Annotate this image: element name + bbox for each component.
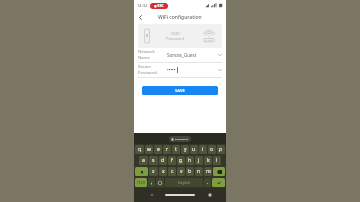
button[interactable]: t (172, 145, 180, 154)
staticText: o (210, 146, 214, 153)
staticText: u (192, 146, 196, 153)
button[interactable]: w (145, 145, 153, 154)
staticText: ?123 (137, 180, 145, 185)
button[interactable]: q (135, 145, 144, 154)
button[interactable]: Hide keyboard (148, 191, 156, 199)
button[interactable]: i (199, 145, 207, 154)
staticText: s (152, 157, 155, 164)
staticText: z (152, 168, 155, 175)
button[interactable]: Back (134, 11, 147, 24)
button[interactable]: o (208, 145, 216, 154)
staticText: q (138, 146, 142, 153)
button[interactable]: English (165, 178, 203, 187)
staticText: j (198, 157, 200, 164)
staticText: . (207, 179, 209, 186)
staticText: WiFi configuration (158, 14, 202, 21)
button[interactable]: h (186, 156, 194, 165)
staticText: b (188, 168, 192, 175)
button[interactable]: p (217, 145, 225, 154)
button[interactable]: f (168, 156, 176, 165)
staticText: Sonoss_Guest (167, 52, 197, 58)
button[interactable]: , (148, 178, 155, 187)
staticText: Router Password (138, 64, 165, 76)
staticText: w (147, 146, 151, 153)
button[interactable]: . (204, 178, 211, 187)
staticText: l (216, 157, 218, 164)
button[interactable]: l (213, 156, 221, 165)
button[interactable]: v (177, 167, 185, 176)
button[interactable]: k (204, 156, 212, 165)
button[interactable]: b (186, 167, 194, 176)
staticText: y (184, 146, 187, 153)
staticText: •••••••••• (175, 137, 189, 142)
staticText: v (180, 168, 183, 175)
staticText: a (142, 157, 145, 164)
button[interactable]: x (159, 167, 167, 176)
staticText: f (171, 157, 173, 164)
staticText: 14:32 (137, 3, 148, 8)
staticText: t (175, 146, 177, 153)
button[interactable]: s (149, 156, 158, 165)
staticText: ● REC (154, 4, 164, 8)
staticText: , (151, 179, 153, 186)
button[interactable]: g (177, 156, 185, 165)
staticText: Network Name (138, 49, 165, 61)
staticText: r (166, 146, 169, 153)
button[interactable]: m (204, 167, 212, 176)
staticText: SSID (171, 31, 180, 36)
staticText: g (179, 157, 183, 164)
button[interactable]: Enter (212, 178, 225, 187)
button[interactable]: Network Name (138, 48, 222, 63)
staticText: m (206, 168, 211, 175)
button[interactable]: Shift (135, 167, 148, 176)
button[interactable]: n (195, 167, 203, 176)
button[interactable]: y (181, 145, 189, 154)
staticText: i (202, 146, 204, 153)
staticText: k (207, 157, 210, 164)
staticText: ••••• (167, 67, 176, 73)
staticText: SAVE (175, 88, 185, 94)
staticText: h (188, 157, 192, 164)
button[interactable]: SAVE (142, 86, 218, 95)
staticText: p (219, 146, 223, 153)
staticText: x (162, 168, 165, 175)
button[interactable]: z (149, 167, 158, 176)
button[interactable]: d (159, 156, 167, 165)
button[interactable]: e (154, 145, 162, 154)
button[interactable]: ?123 (135, 178, 147, 187)
staticText: e (157, 146, 160, 153)
button[interactable]: Backspace (213, 167, 225, 176)
button[interactable]: Keyboard settings (206, 191, 214, 199)
staticText: n (197, 168, 201, 175)
staticText: English (178, 180, 191, 185)
button[interactable]: c (168, 167, 176, 176)
button[interactable]: Router Password (138, 63, 222, 78)
button[interactable]: j (195, 156, 203, 165)
button[interactable]: a (139, 156, 148, 165)
button[interactable]: Emoji (156, 178, 164, 187)
staticText: Password (166, 36, 185, 41)
staticText: d (161, 157, 165, 164)
staticText: c (171, 168, 174, 175)
button[interactable]: u (190, 145, 198, 154)
button[interactable]: •••••••••• (171, 136, 189, 142)
button[interactable]: r (163, 145, 171, 154)
